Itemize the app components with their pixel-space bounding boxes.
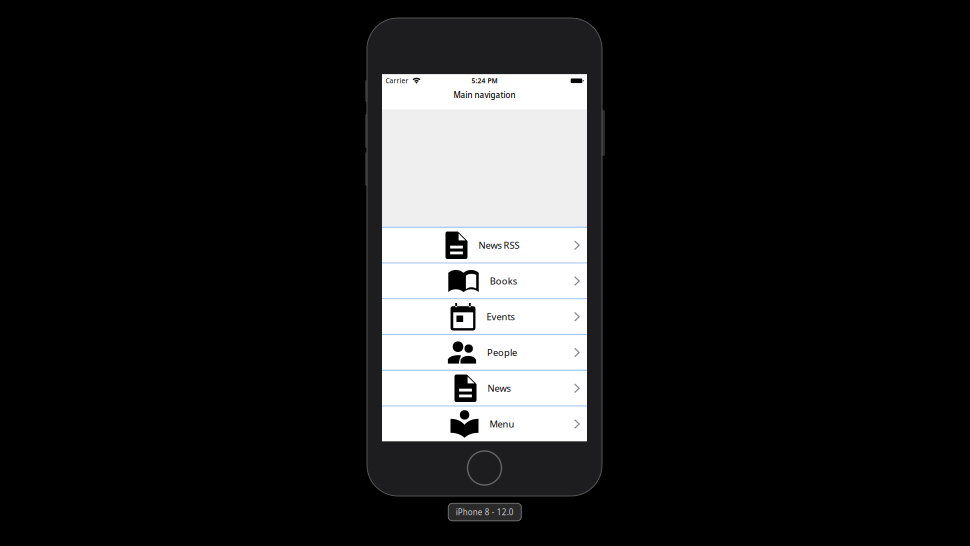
staticText: People: [487, 346, 517, 359]
staticText: Events: [486, 311, 514, 323]
staticText: iPhone 8 - 12.0: [456, 507, 514, 517]
button[interactable]: News: [382, 370, 587, 406]
button[interactable]: Menu: [382, 405, 587, 441]
staticText: News RSS: [478, 239, 519, 251]
staticText: Main navigation: [453, 90, 515, 100]
button[interactable]: Events: [382, 298, 587, 334]
button[interactable]: News RSS: [382, 227, 587, 263]
staticText: 5:24 PM: [471, 76, 497, 85]
staticText: News: [487, 382, 510, 394]
staticText: Carrier: [385, 76, 408, 85]
staticText: Books: [490, 275, 517, 287]
button[interactable]: People: [382, 334, 587, 370]
staticText: Menu: [489, 418, 514, 430]
button[interactable]: Books: [382, 262, 587, 298]
